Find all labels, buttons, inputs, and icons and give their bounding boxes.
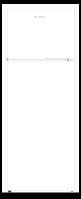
button[interactable]: Refrigerator product photo bbox=[0, 0, 81, 199]
